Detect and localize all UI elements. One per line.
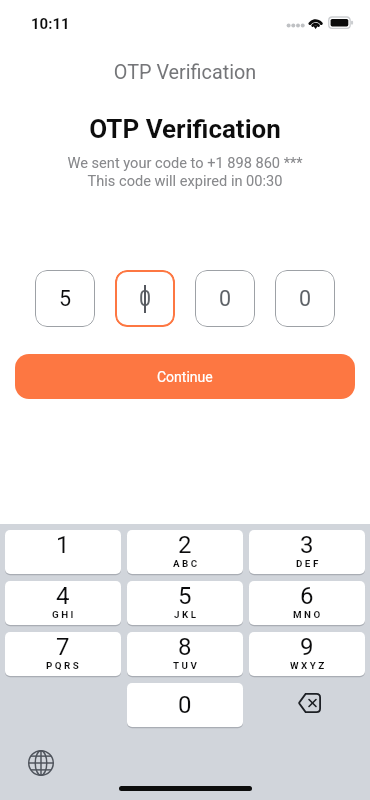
staticText: 7 <box>56 633 70 661</box>
staticText: 5 <box>178 582 192 610</box>
button[interactable]: 0 <box>115 270 175 327</box>
staticText: 2 <box>178 531 192 559</box>
button[interactable]: Continue <box>15 354 355 399</box>
staticText: JKL <box>174 609 199 620</box>
staticText: WXYZ <box>290 660 327 671</box>
button[interactable]: Backspace <box>249 683 365 727</box>
staticText: PQRS <box>46 660 82 671</box>
staticText: 5 <box>59 286 72 311</box>
staticText: 10:11 <box>31 15 70 33</box>
button[interactable]: 0 <box>127 683 243 727</box>
staticText: 3 <box>300 531 314 559</box>
staticText: 0 <box>219 286 232 311</box>
staticText: DEF <box>296 558 321 569</box>
staticText: GHI <box>52 609 76 620</box>
button[interactable]: 2 <box>127 530 243 574</box>
button[interactable]: 5 <box>127 581 243 625</box>
button[interactable]: 3 <box>249 530 365 574</box>
staticText: OTP Verification <box>0 61 370 84</box>
staticText: 0 <box>139 286 152 311</box>
staticText: 0 <box>299 286 312 311</box>
staticText: 8 <box>178 633 192 661</box>
button[interactable]: 0 <box>195 270 255 327</box>
staticText: OTP Verification <box>0 114 370 144</box>
staticText: ABC <box>173 558 200 569</box>
button[interactable]: Change keyboard language <box>26 748 56 778</box>
staticText: 6 <box>300 582 314 610</box>
button[interactable]: 7 <box>5 632 121 676</box>
staticText: We sent your code to +1 898 860 *** This… <box>0 154 370 189</box>
button[interactable]: 0 <box>275 270 335 327</box>
button[interactable]: 9 <box>249 632 365 676</box>
button[interactable]: 1 <box>5 530 121 574</box>
button[interactable]: 5 <box>35 270 95 327</box>
staticText: Continue <box>157 369 213 385</box>
staticText: 9 <box>300 633 314 661</box>
button[interactable]: 8 <box>127 632 243 676</box>
button[interactable]: 6 <box>249 581 365 625</box>
staticText: MNO <box>293 609 323 620</box>
staticText: 1 <box>56 531 70 559</box>
staticText: 0 <box>178 691 192 719</box>
staticText: 4 <box>56 582 70 610</box>
staticText: TUV <box>173 660 200 671</box>
button[interactable]: 4 <box>5 581 121 625</box>
